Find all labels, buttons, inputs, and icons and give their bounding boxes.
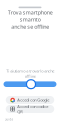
button[interactable]: Accedi con Google	[6, 96, 54, 104]
button[interactable]: Accedi con codice QR	[6, 105, 54, 113]
staticText: Accedi con Google	[17, 97, 49, 103]
staticText: Guida	[4, 118, 12, 121]
button[interactable]: Guida	[4, 118, 12, 121]
staticText: Accedi con codice QR	[17, 104, 48, 114]
staticText: Trova smartphone smarrito anche se offli…	[7, 9, 52, 30]
staticText: Ti aiutiamo a trovarlo anche offline	[6, 68, 54, 79]
